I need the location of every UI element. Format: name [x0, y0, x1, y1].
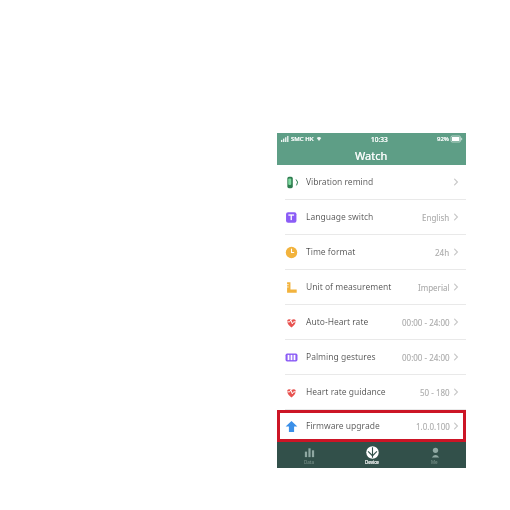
button[interactable]: Auto-Heart rate — [277, 305, 466, 339]
staticText: Palming gestures — [306, 351, 376, 363]
staticText: 1.0.0.100 — [416, 421, 450, 432]
staticText: Device — [365, 459, 379, 465]
staticText: Unit of measurement — [306, 281, 392, 293]
staticText: Time format — [306, 246, 356, 258]
button[interactable]: Heart rate guidance — [277, 375, 466, 409]
staticText: 10:33 — [371, 135, 388, 144]
button[interactable]: Device — [340, 442, 403, 468]
staticText: Me — [431, 459, 438, 465]
staticText: Language switch — [306, 211, 374, 223]
button[interactable]: Language switch — [277, 200, 466, 234]
staticText: 50 - 180 — [420, 387, 450, 398]
staticText: English — [422, 212, 450, 223]
staticText: Firmware upgrade — [306, 420, 380, 432]
staticText: Imperial — [418, 282, 450, 293]
button[interactable]: Vibration remind — [277, 165, 466, 199]
button[interactable]: Time format — [277, 235, 466, 269]
staticText: 00:00 - 24:00 — [402, 317, 450, 328]
staticText: Heart rate guidance — [306, 386, 386, 398]
button[interactable]: Firmware upgrade — [277, 410, 466, 442]
staticText: Watch — [355, 148, 388, 163]
staticText: 92% — [437, 135, 449, 143]
button[interactable]: Data — [277, 442, 340, 468]
staticText: Auto-Heart rate — [306, 316, 369, 328]
button[interactable]: Unit of measurement — [277, 270, 466, 304]
staticText: Data — [304, 459, 314, 465]
staticText: 24h — [435, 247, 450, 258]
staticText: Vibration remind — [306, 176, 374, 188]
button[interactable]: Me — [403, 442, 466, 468]
staticText: SMC HK — [291, 135, 314, 143]
staticText: 00:00 - 24:00 — [402, 352, 450, 363]
button[interactable]: Palming gestures — [277, 340, 466, 374]
